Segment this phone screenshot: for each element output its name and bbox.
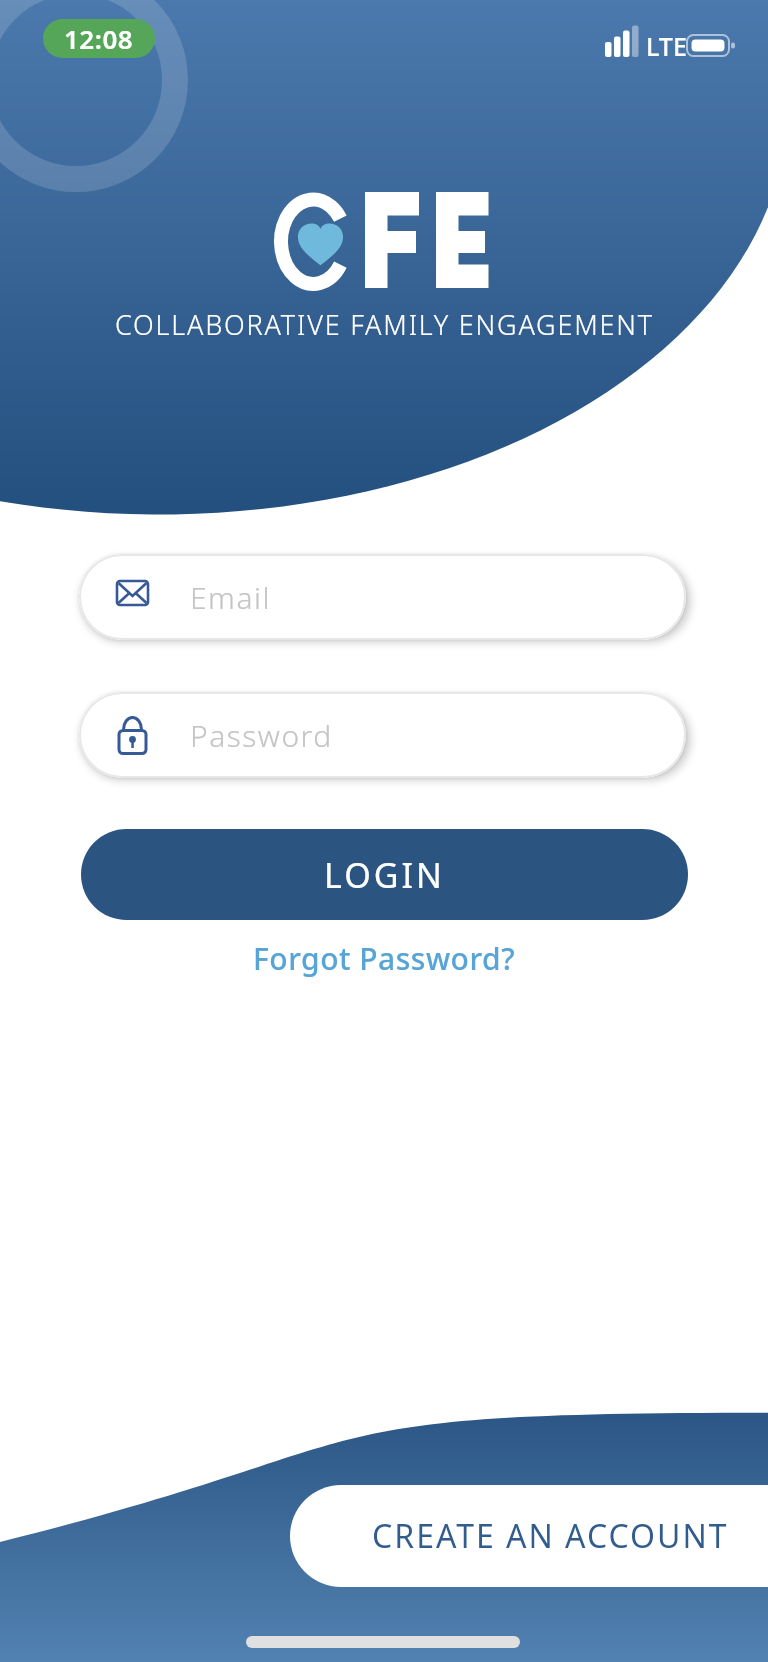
- button[interactable]: Email: [79, 554, 686, 640]
- staticText: Email: [190, 577, 271, 618]
- staticText: CREATE AN ACCOUNT: [372, 1514, 729, 1558]
- button[interactable]: CREATE AN ACCOUNT: [290, 1485, 768, 1587]
- button[interactable]: Forgot Password?: [253, 938, 516, 979]
- button[interactable]: Password: [79, 692, 686, 778]
- staticText: LTE: [646, 29, 687, 63]
- button[interactable]: LOGIN: [81, 829, 688, 920]
- staticText: 12:08: [64, 21, 134, 56]
- staticText: COLLABORATIVE FAMILY ENGAGEMENT: [115, 306, 654, 343]
- staticText: LOGIN: [324, 852, 445, 898]
- staticText: Password: [190, 715, 333, 756]
- staticText: Forgot Password?: [253, 938, 516, 979]
